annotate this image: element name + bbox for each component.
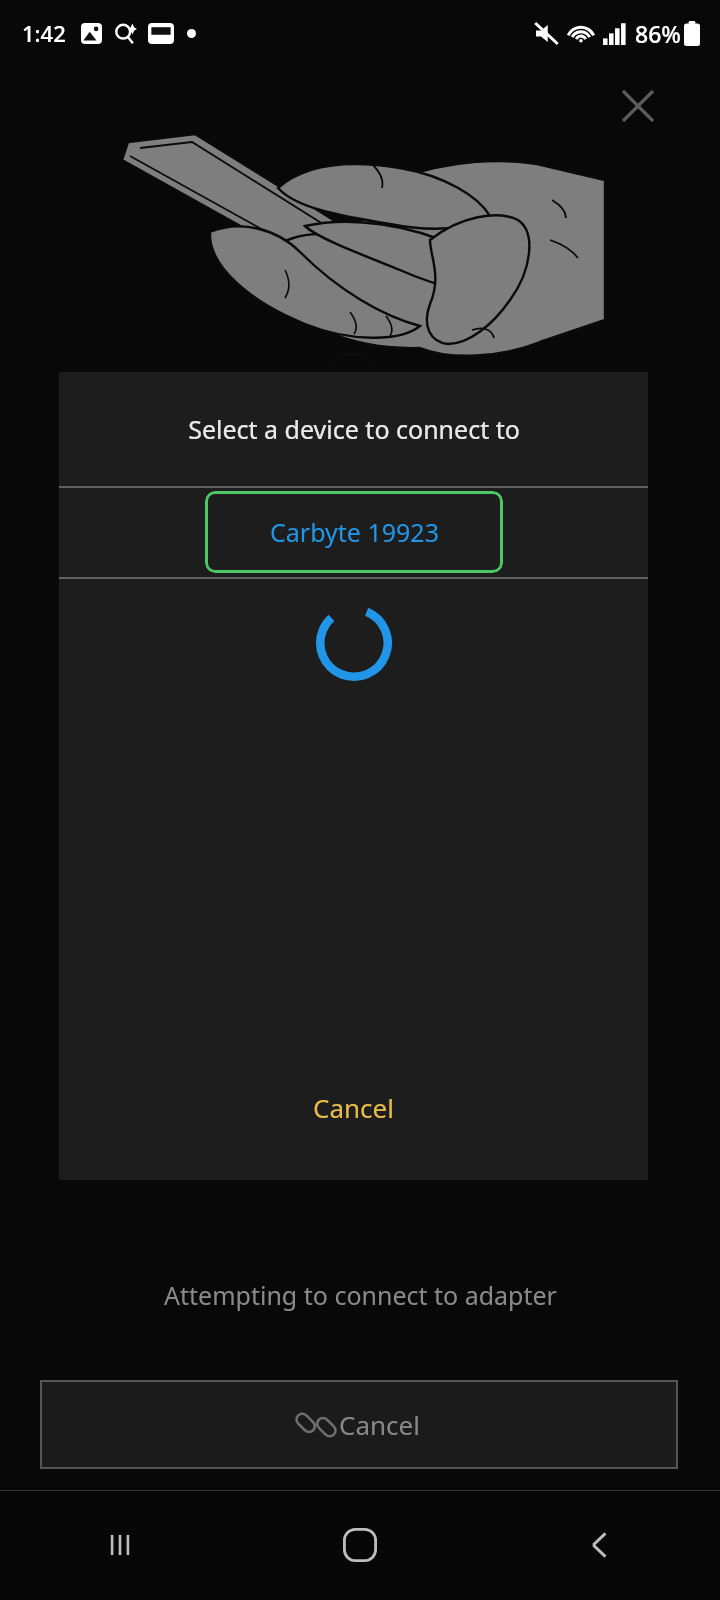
staticText: Carbyte 19923 — [270, 515, 439, 549]
button[interactable]: Home — [315, 1500, 405, 1590]
staticText: Attempting to connect to adapter — [164, 1278, 557, 1312]
staticText: Cancel — [313, 1090, 394, 1125]
staticText: 1:42 — [22, 18, 66, 48]
staticText: 86% — [635, 18, 681, 49]
button[interactable]: Cancel — [40, 1380, 678, 1469]
button[interactable]: Cancel — [59, 1042, 648, 1172]
staticText: Cancel — [339, 1407, 420, 1442]
button[interactable]: Carbyte 19923 — [205, 491, 503, 573]
staticText: Select a device to connect to — [188, 412, 520, 446]
button[interactable]: Close — [602, 70, 674, 142]
button[interactable]: Recent apps — [75, 1500, 165, 1590]
button[interactable]: Back — [555, 1500, 645, 1590]
